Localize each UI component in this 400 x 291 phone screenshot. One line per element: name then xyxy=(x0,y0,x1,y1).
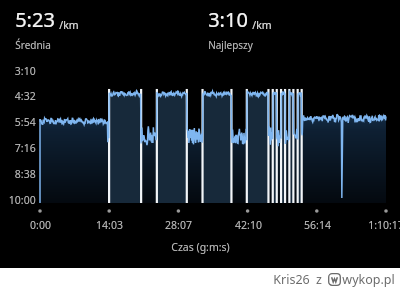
staticText: 3:10 xyxy=(9,64,36,78)
staticText: Czas (g:m:s) xyxy=(171,240,230,254)
staticText: wykop.pl xyxy=(342,271,395,288)
staticText: 4:32 xyxy=(9,89,36,103)
staticText: Kris26 xyxy=(273,271,310,288)
staticText: 1:10:17 xyxy=(368,218,400,232)
other: wykop logo xyxy=(328,273,341,286)
staticText: 14:03 xyxy=(96,218,123,232)
button[interactable]: 5:23 xyxy=(15,0,200,52)
staticText: /km xyxy=(252,18,272,32)
staticText: 28:07 xyxy=(165,218,192,232)
staticText: /km xyxy=(59,18,79,32)
staticText: 5:54 xyxy=(9,115,36,129)
staticText: 0:00 xyxy=(30,218,51,232)
staticText: 10:00 xyxy=(3,193,36,207)
staticText: 5:23 xyxy=(15,6,55,33)
staticText: Średnia xyxy=(15,38,51,52)
staticText: 8:38 xyxy=(9,167,36,181)
button[interactable] xyxy=(0,0,400,291)
staticText: Najlepszy xyxy=(208,38,253,52)
staticText: 7:16 xyxy=(9,141,36,155)
staticText: 3:10 xyxy=(208,6,248,33)
staticText: 56:14 xyxy=(304,218,331,232)
button[interactable]: 3:10 xyxy=(208,0,400,52)
staticText: 42:10 xyxy=(235,218,262,232)
staticText: z xyxy=(316,271,322,288)
